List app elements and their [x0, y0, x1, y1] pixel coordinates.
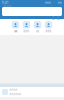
- staticText: ccc: [36, 29, 39, 33]
- button[interactable]: ddd: [43, 20, 54, 33]
- staticText: nnn: [45, 1, 51, 4]
- button[interactable]: ccc: [32, 20, 43, 33]
- staticText: 9:41: [2, 1, 9, 4]
- staticText: bbb: [23, 29, 29, 33]
- staticText: nnnn: [9, 88, 17, 91]
- staticText: ddd: [45, 29, 51, 33]
- staticText: nn: [58, 1, 62, 4]
- button[interactable]: nnnn: [0, 87, 64, 97]
- button[interactable]: bbb: [21, 20, 32, 33]
- staticText: nnnnnn: [9, 92, 21, 96]
- button[interactable]: Contacts: [52, 16, 55, 19]
- staticText: aaa: [14, 29, 17, 33]
- button[interactable]: aaa: [10, 20, 21, 33]
- button[interactable]: Scan: [57, 16, 60, 19]
- staticText: Search: [3, 4, 11, 8]
